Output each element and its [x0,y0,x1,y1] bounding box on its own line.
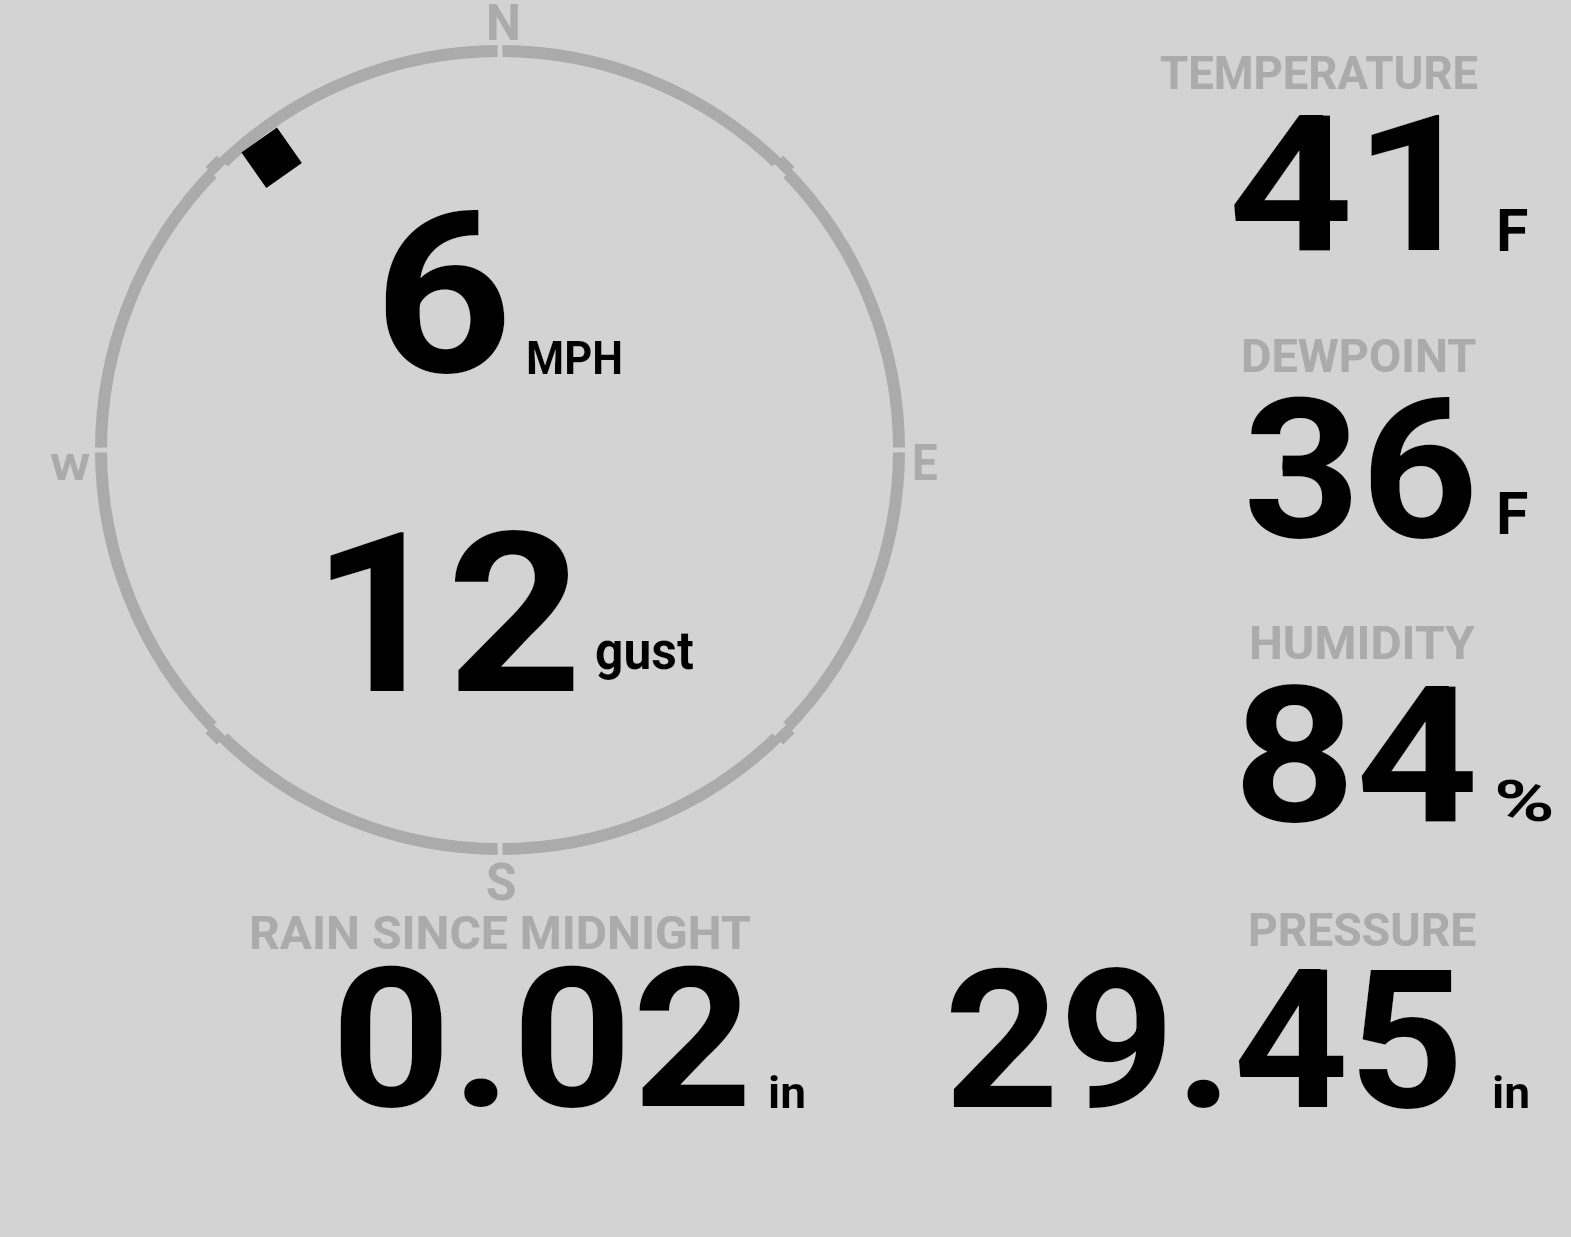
staticText: RAIN SINCE MIDNIGHT [249,906,751,960]
staticText: 6 [374,164,513,427]
staticText: 41 [1228,74,1480,297]
staticText: W [50,445,90,489]
staticText: % [1494,768,1556,835]
button[interactable]: Rain since midnight 0.02 inches [230,900,830,1130]
staticText: gust [595,620,695,682]
staticText: 0.02 [331,925,753,1154]
button[interactable]: Wind direction compass [101,51,899,849]
staticText: TEMPERATURE [1160,46,1478,100]
button[interactable]: Temperature 41 degrees Fahrenheit [1140,40,1560,290]
button[interactable]: Humidity 84 percent [1140,612,1560,862]
staticText: in [1492,1066,1531,1119]
button[interactable]: Dewpoint 36 degrees Fahrenheit [1140,325,1560,575]
staticText: DEWPOINT [1241,329,1477,383]
staticText: PRESSURE [1248,903,1477,957]
staticText: 12 [311,485,583,745]
staticText: 36 [1243,356,1479,585]
staticText: N [486,0,522,53]
staticText: HUMIDITY [1249,616,1475,670]
staticText: 84 [1233,645,1480,868]
staticText: F [1496,196,1529,265]
button[interactable]: Pressure 29.45 inches [900,900,1550,1130]
staticText: F [1496,479,1529,548]
staticText: MPH [526,331,624,385]
staticText: in [768,1067,807,1119]
staticText: 29.45 [944,928,1464,1154]
staticText: E [912,434,938,493]
staticText: S [486,852,517,913]
